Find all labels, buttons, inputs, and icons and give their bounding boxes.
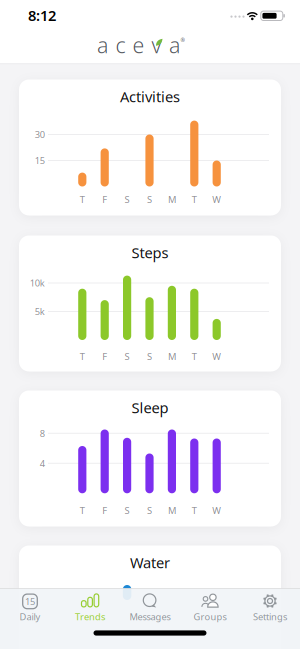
staticText: M (168, 193, 176, 206)
button[interactable]: Groups (180, 588, 240, 646)
staticText: M (168, 350, 176, 363)
staticText: T (80, 193, 85, 206)
staticText: Sleep (131, 398, 168, 417)
staticText: 15 (25, 595, 35, 608)
staticText: Settings (253, 610, 287, 623)
button[interactable]: Trends (60, 588, 120, 646)
staticText: F (102, 350, 107, 363)
staticText: S (147, 350, 152, 363)
staticText: a (169, 31, 180, 59)
staticText: 30 (35, 128, 45, 141)
staticText: T (80, 350, 85, 363)
staticText: a (97, 31, 108, 59)
staticText: T (192, 193, 197, 206)
staticText: 8:12 (28, 6, 56, 25)
staticText: S (147, 504, 152, 516)
staticText: F (102, 193, 107, 206)
button[interactable]: Settings (240, 588, 300, 646)
button[interactable]: 15 (0, 588, 60, 646)
staticText: T (192, 504, 197, 516)
staticText: S (125, 193, 130, 206)
staticText: v (151, 31, 161, 59)
staticText: S (125, 350, 130, 363)
staticText: Messages (129, 610, 170, 623)
staticText: S (147, 193, 152, 206)
staticText: 4 (40, 457, 45, 469)
button[interactable]: Messages (120, 588, 180, 646)
staticText: 8 (40, 427, 45, 439)
staticText: W (212, 193, 221, 206)
staticText: c (115, 31, 125, 59)
staticText: M (168, 504, 176, 516)
staticText: Activities (120, 87, 180, 106)
staticText: Daily (19, 610, 40, 623)
staticText: S (125, 504, 130, 516)
staticText: T (80, 504, 85, 516)
staticText: Trends (75, 610, 105, 623)
staticText: Water (130, 553, 170, 572)
staticText: Steps (131, 243, 168, 262)
staticText: ® (180, 37, 184, 44)
staticText: Groups (193, 610, 226, 623)
staticText: F (102, 504, 107, 516)
staticText: e (132, 31, 144, 59)
staticText: 15 (35, 154, 45, 167)
staticText: 5k (35, 305, 45, 318)
staticText: W (212, 504, 221, 516)
staticText: T (192, 350, 197, 363)
staticText: 10k (30, 277, 45, 289)
staticText: W (212, 350, 221, 363)
